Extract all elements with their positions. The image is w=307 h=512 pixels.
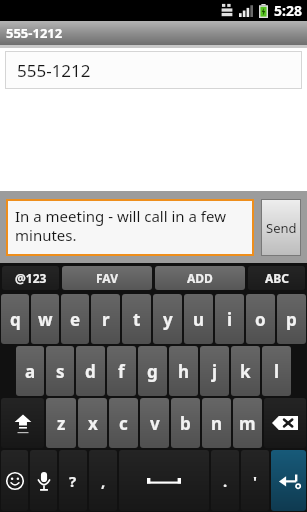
staticText: i [227, 308, 233, 331]
staticText: , [101, 471, 106, 491]
button[interactable]: k [231, 346, 260, 396]
button[interactable]: Send [262, 200, 300, 255]
button[interactable]: n [202, 398, 231, 448]
button[interactable]: j [200, 346, 229, 396]
staticText: p [286, 308, 297, 331]
button[interactable]: y [153, 294, 182, 344]
staticText: x [88, 412, 98, 435]
button[interactable]: . [211, 450, 239, 511]
staticText: z [57, 412, 66, 435]
button[interactable]: i [215, 294, 244, 344]
button[interactable]: f [107, 346, 136, 396]
button[interactable]: t [122, 294, 151, 344]
staticText: u [193, 308, 205, 331]
button[interactable]: r [91, 294, 120, 344]
staticText: . [223, 471, 228, 491]
button[interactable]: ADD [155, 266, 245, 290]
button[interactable]: x [78, 398, 107, 448]
staticText: In a meeting - will call in a few minute… [15, 206, 247, 245]
staticText: ABC [265, 270, 289, 286]
button[interactable]: b [171, 398, 200, 448]
button[interactable]: a [16, 346, 44, 396]
button[interactable]: z [46, 398, 76, 448]
button[interactable]: w [31, 294, 59, 344]
staticText: 555-1212 [6, 24, 63, 42]
staticText: l [274, 360, 280, 383]
staticText: ' [253, 471, 257, 491]
button[interactable]: u [184, 294, 213, 344]
staticText: c [119, 412, 128, 435]
staticText: b [180, 412, 191, 435]
staticText: @123 [15, 270, 47, 286]
button[interactable]: p [277, 294, 306, 344]
staticText: n [211, 412, 223, 435]
button[interactable]: q [1, 294, 29, 344]
button[interactable]: ? [59, 450, 87, 511]
staticText: r [102, 308, 110, 331]
button[interactable]: , [89, 450, 117, 511]
button[interactable]: v [140, 398, 169, 448]
staticText: FAV [96, 270, 118, 286]
button[interactable]: s [46, 346, 74, 396]
staticText: e [70, 308, 81, 331]
button[interactable]: Backspace [264, 398, 306, 448]
staticText: h [178, 360, 190, 383]
staticText: y [163, 308, 173, 331]
button[interactable]: Shift [1, 398, 44, 448]
button[interactable]: c [109, 398, 138, 448]
staticText: o [255, 308, 266, 331]
staticText: w [38, 308, 53, 331]
staticText: ? [69, 471, 77, 491]
button[interactable]: Enter [271, 450, 306, 511]
button[interactable]: Voice input [30, 450, 57, 511]
staticText: d [85, 360, 96, 383]
button[interactable]: ' [241, 450, 269, 511]
button[interactable]: d [76, 346, 105, 396]
button[interactable]: m [233, 398, 262, 448]
button[interactable]: Space [119, 450, 209, 511]
staticText: q [10, 308, 21, 331]
staticText: v [150, 412, 160, 435]
staticText: t [133, 308, 141, 331]
staticText: f [118, 360, 125, 383]
button[interactable]: l [262, 346, 291, 396]
staticText: m [239, 412, 256, 435]
button[interactable]: e [61, 294, 89, 344]
staticText: s [56, 360, 65, 383]
staticText: 5:28 [274, 1, 302, 20]
staticText: 555-1212 [17, 59, 91, 82]
button[interactable]: 555-1212 [6, 52, 301, 88]
staticText: k [240, 360, 251, 383]
staticText: Send [266, 219, 297, 237]
staticText: j [212, 360, 218, 383]
button[interactable]: o [246, 294, 275, 344]
button[interactable]: g [138, 346, 167, 396]
button[interactable]: In a meeting - will call in a few minute… [8, 201, 252, 254]
button[interactable]: @123 [2, 266, 59, 290]
button[interactable]: FAV [62, 266, 152, 290]
staticText: g [147, 360, 158, 383]
button[interactable]: Emoji [1, 450, 28, 511]
staticText: a [25, 360, 36, 383]
button[interactable]: h [169, 346, 198, 396]
staticText: ADD [187, 270, 213, 286]
button[interactable]: ABC [248, 266, 305, 290]
